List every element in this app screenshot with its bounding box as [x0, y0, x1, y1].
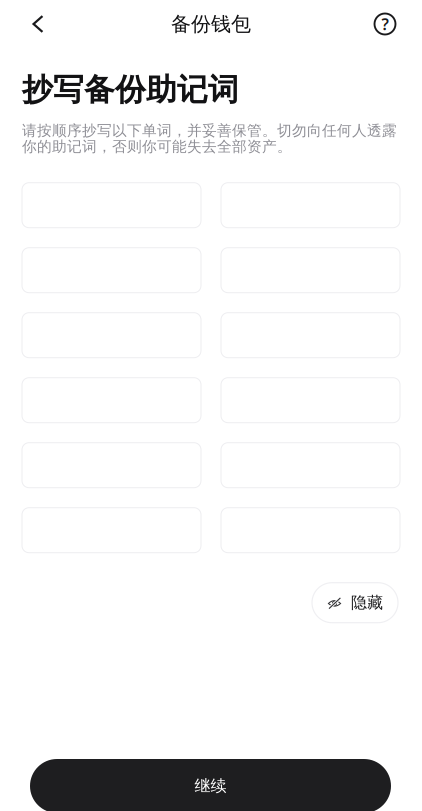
staticText: 抄写备份助记词 — [22, 71, 239, 109]
button[interactable]: 继续 — [30, 759, 391, 811]
button[interactable]: 返回 — [23, 2, 53, 46]
staticText: ? — [381, 13, 388, 35]
staticText: 备份钱包 — [171, 12, 251, 36]
button[interactable]: 帮助 — [370, 2, 400, 46]
staticText: 继续 — [194, 776, 226, 796]
staticText: 隐藏 — [351, 593, 383, 613]
button[interactable]: 隐藏 — [312, 583, 398, 623]
staticText: 请按顺序抄写以下单词，并妥善保管。切勿向任何人透露你的助记词，否则你可能失去全部… — [22, 122, 397, 156]
